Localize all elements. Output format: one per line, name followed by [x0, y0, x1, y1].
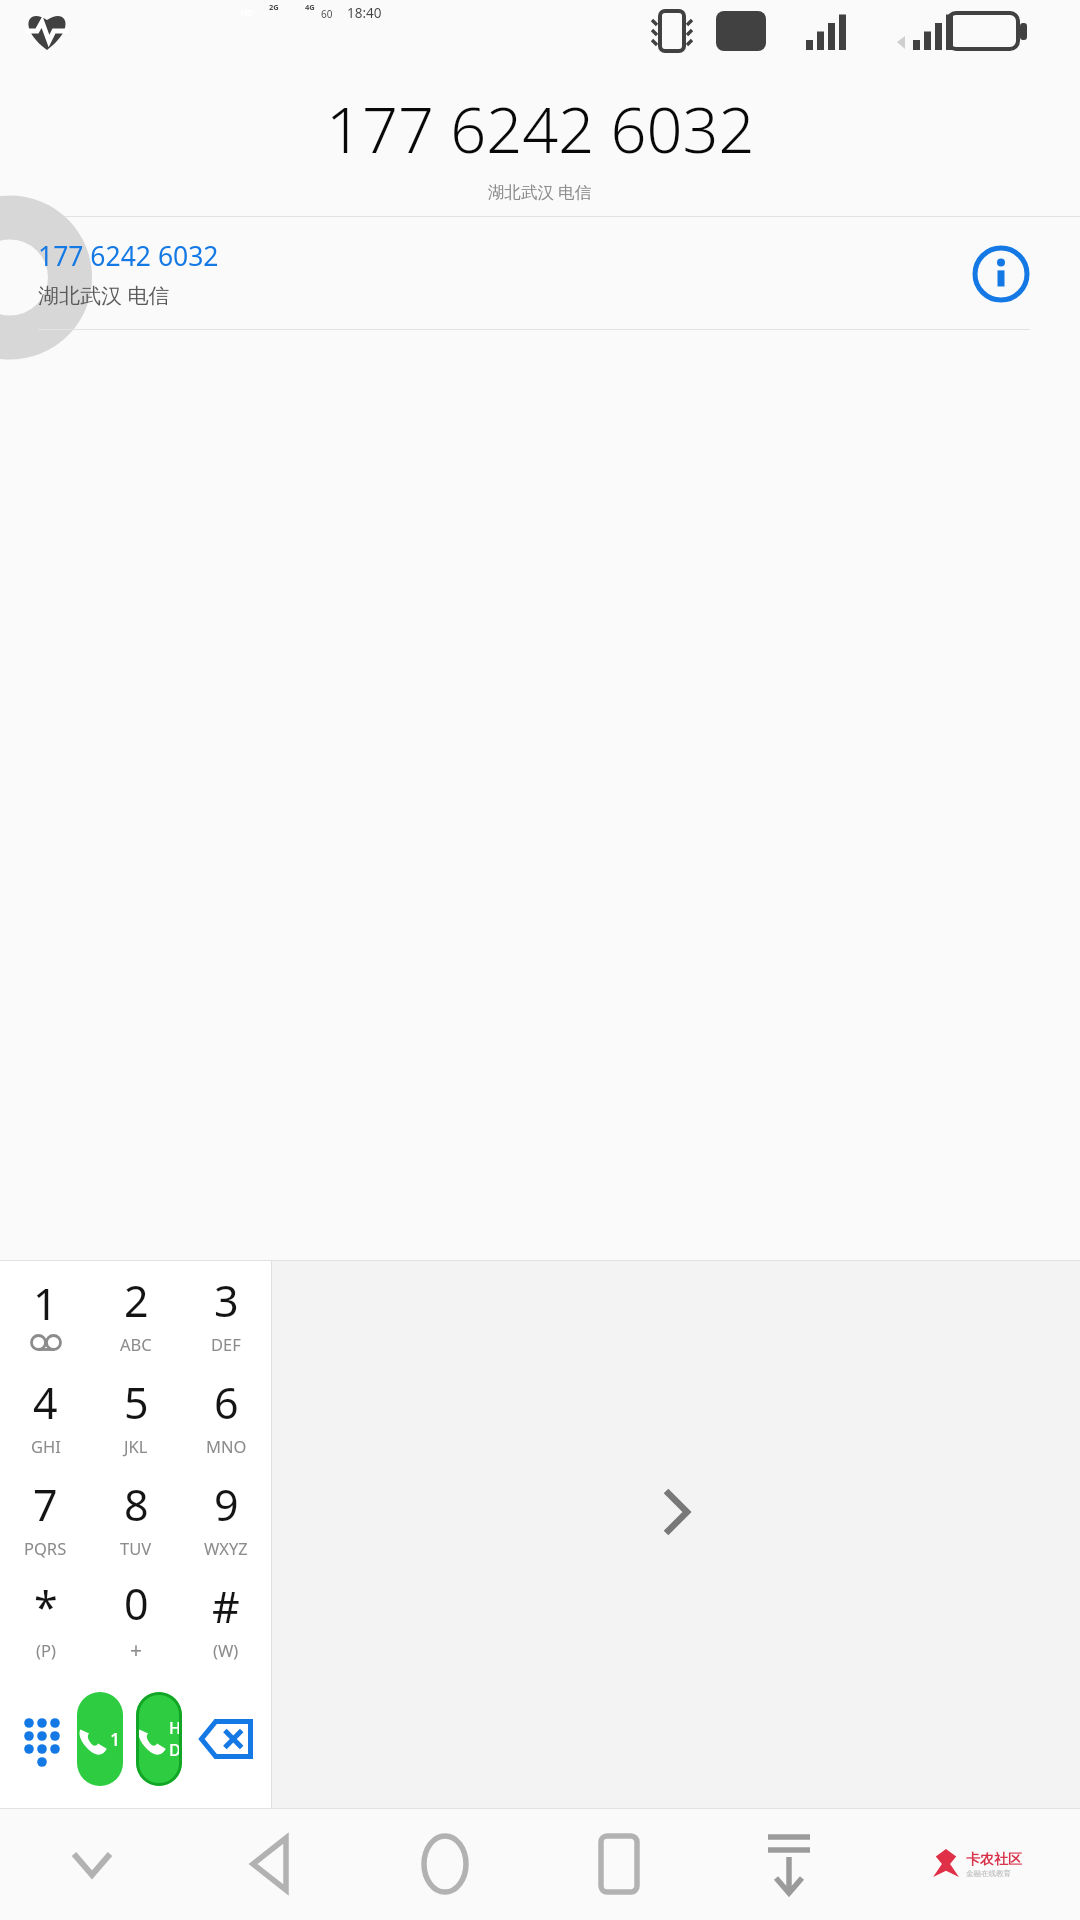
staticText: 金融在线教育 [966, 1869, 1011, 1878]
staticText: TUV [120, 1537, 152, 1559]
staticText: 7 [33, 1475, 58, 1534]
button[interactable]: HD [136, 1692, 182, 1786]
button[interactable]: 6 [181, 1364, 271, 1466]
staticText: 4G [305, 2, 315, 12]
staticText: 8 [124, 1475, 149, 1534]
staticText: 4 [33, 1373, 58, 1432]
staticText: 5 [124, 1373, 149, 1432]
staticText: 6 [214, 1373, 239, 1432]
staticText: (P) [36, 1639, 56, 1661]
staticText: WXYZ [204, 1537, 248, 1559]
staticText: 0 [124, 1574, 149, 1633]
button[interactable]: Back [184, 1808, 358, 1920]
staticText: + [130, 1636, 143, 1665]
staticText: * [34, 1577, 58, 1636]
staticText: 2 [124, 1271, 149, 1330]
button[interactable]: 7 [0, 1466, 91, 1568]
button[interactable]: 2 [91, 1261, 181, 1364]
staticText: ABC [120, 1333, 152, 1355]
button[interactable]: 4 [0, 1364, 91, 1466]
staticText: GHI [31, 1435, 61, 1457]
staticText: 1 [33, 1274, 58, 1333]
button[interactable]: 1 [0, 1261, 91, 1364]
button[interactable]: 0 [91, 1568, 181, 1670]
staticText: MNO [206, 1435, 247, 1457]
staticText: # [212, 1577, 240, 1636]
button[interactable]: Recent apps [532, 1808, 706, 1920]
staticText: PQRS [24, 1537, 67, 1559]
staticText: 177 6242 6032 [326, 86, 755, 172]
button[interactable]: Backspace [190, 1697, 262, 1781]
staticText: DEF [211, 1333, 241, 1355]
button[interactable]: Download [706, 1808, 871, 1920]
button[interactable]: 5 [91, 1364, 181, 1466]
staticText: 卡农社区 [966, 1851, 1022, 1869]
staticText: 60 [321, 7, 333, 21]
staticText: HD [169, 1717, 182, 1761]
staticText: JKL [124, 1435, 148, 1457]
button[interactable]: 1 [77, 1692, 123, 1786]
staticText: (W) [213, 1639, 239, 1661]
staticText: 湖北武汉 电信 [38, 281, 170, 310]
staticText: 9 [214, 1475, 239, 1534]
staticText: 18:40 [347, 4, 382, 22]
button[interactable]: 3 [181, 1261, 271, 1364]
staticText: 湖北武汉 电信 [488, 180, 592, 203]
staticText: 3 [214, 1271, 239, 1330]
button[interactable]: 8 [91, 1466, 181, 1568]
button[interactable]: Keypad [9, 1697, 75, 1781]
button[interactable]: Hide keypad [0, 1808, 184, 1920]
button[interactable]: 177 6242 6032 [0, 217, 1080, 330]
button[interactable]: 9 [181, 1466, 271, 1568]
button[interactable]: Expand contacts panel [640, 1476, 712, 1548]
staticText: 2G [269, 2, 279, 12]
button[interactable]: # [181, 1568, 271, 1670]
button[interactable]: Home [358, 1808, 532, 1920]
staticText: 1 [110, 1727, 121, 1752]
button[interactable]: * [0, 1568, 91, 1670]
staticText: 177 6242 6032 [38, 238, 219, 274]
button[interactable]: Contact info [972, 245, 1030, 303]
